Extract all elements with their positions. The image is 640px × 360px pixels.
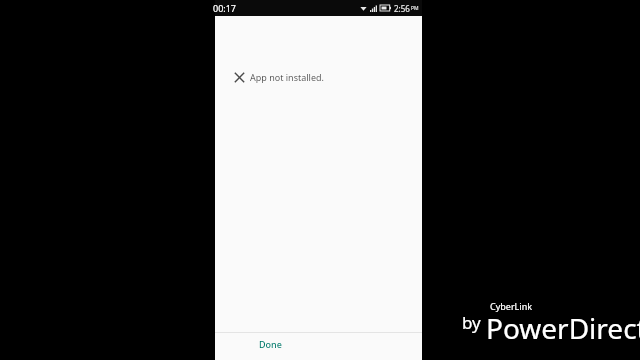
other: Failed xyxy=(234,72,245,83)
staticText: 00:17 xyxy=(213,2,237,14)
staticText: App not installed. xyxy=(250,71,324,83)
staticText: 2:56 xyxy=(394,3,410,14)
staticText: Done xyxy=(259,338,282,350)
staticText: CyberLink xyxy=(490,300,533,312)
staticText: by xyxy=(462,311,481,334)
staticText: PM xyxy=(411,5,419,12)
staticText: PowerDirector xyxy=(486,309,640,347)
button[interactable]: Done xyxy=(253,334,288,354)
